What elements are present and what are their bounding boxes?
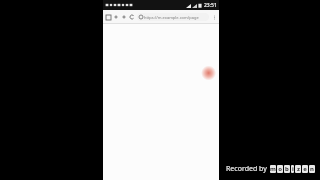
- button[interactable]: New tab: [121, 14, 127, 20]
- staticText: o: [278, 165, 282, 173]
- staticText: i: [292, 165, 294, 173]
- button[interactable]: Reload: [129, 14, 135, 20]
- staticText: n: [310, 165, 314, 173]
- staticText: b: [285, 165, 289, 173]
- staticText: z: [297, 165, 300, 173]
- button[interactable]: https://m.example.com/page: [137, 13, 209, 21]
- staticText: https://m.example.com/page: [144, 15, 199, 20]
- button[interactable]: Tabs: [105, 14, 111, 20]
- button[interactable]: Back: [113, 14, 119, 20]
- staticText: m: [270, 165, 276, 173]
- button[interactable]: More options: [211, 14, 217, 20]
- staticText: e: [303, 165, 307, 173]
- staticText: Recorded by: [226, 164, 267, 174]
- staticText: 23:51: [204, 2, 217, 9]
